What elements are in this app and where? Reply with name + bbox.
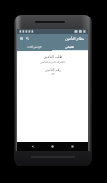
button[interactable]: Navigation drawer [18,34,24,43]
staticText: الشركة العربية للتأمين [40,60,65,64]
button[interactable]: Recent apps [68,142,77,151]
staticText: الإشتراكات [27,45,42,49]
staticText: طلب التأمين [43,54,63,59]
staticText: رقم التأمين [45,67,61,72]
button[interactable]: Home [48,142,57,151]
button[interactable]: Back [28,142,37,151]
staticText: طلباتي [65,45,75,49]
staticText: ١٢٣ [50,73,55,76]
button[interactable]: Search [24,34,31,43]
staticText: نظام التأمين [65,36,85,41]
button[interactable]: الإشتراكات [17,43,52,51]
button[interactable]: طلباتي [52,43,88,51]
